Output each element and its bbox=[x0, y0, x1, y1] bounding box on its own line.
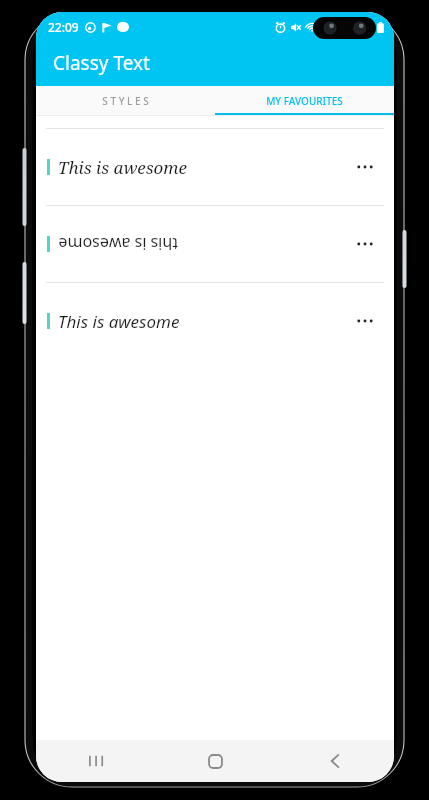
staticText: this is awesome bbox=[58, 233, 178, 255]
button[interactable]: Home bbox=[156, 740, 275, 782]
staticText: S T Y L E S bbox=[102, 94, 149, 108]
staticText: 38% bbox=[351, 19, 375, 35]
button[interactable]: MY FAVOURITES bbox=[215, 86, 394, 115]
button[interactable]: More options bbox=[350, 152, 380, 182]
button[interactable]: More options bbox=[350, 229, 380, 259]
button[interactable]: S T Y L E S bbox=[36, 86, 215, 115]
staticText: 22:09 bbox=[48, 19, 79, 35]
button[interactable]: this is awesome bbox=[36, 206, 394, 282]
button[interactable]: Recents bbox=[36, 740, 156, 782]
staticText: This is awesome bbox=[58, 310, 180, 333]
staticText: MY FAVOURITES bbox=[266, 94, 343, 108]
button[interactable]: This is awesome bbox=[36, 129, 394, 205]
staticText: Classy Text bbox=[53, 50, 150, 76]
button[interactable]: Back bbox=[275, 740, 394, 782]
staticText: This is awesome bbox=[58, 156, 187, 179]
button[interactable]: More options bbox=[350, 306, 380, 336]
button[interactable]: This is awesome bbox=[36, 283, 394, 359]
